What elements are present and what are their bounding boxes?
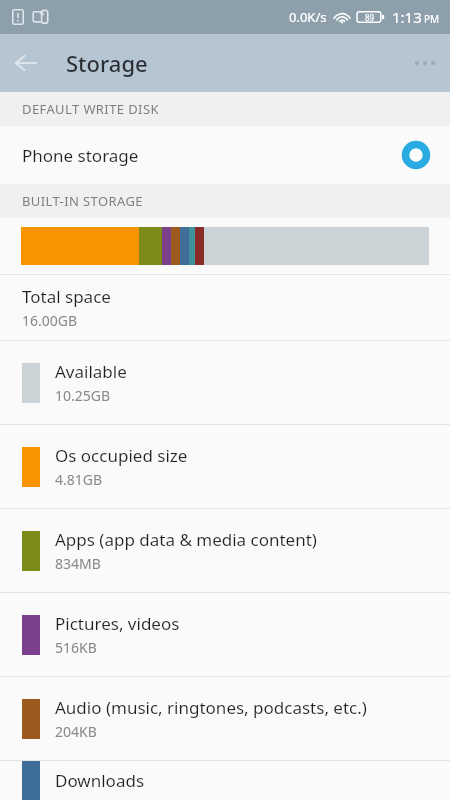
button[interactable]: Pictures, videos	[0, 593, 450, 676]
button[interactable]: Audio (music, ringtones, podcasts, etc.)	[0, 677, 450, 760]
staticText: 4.81GB	[55, 470, 103, 489]
staticText: Phone storage	[22, 144, 139, 167]
button[interactable]: Available	[0, 341, 450, 424]
staticText: 16.00GB	[22, 311, 78, 330]
staticText: 834MB	[55, 554, 101, 573]
staticText: BUILT-IN STORAGE	[22, 192, 143, 210]
button[interactable]: Downloads	[0, 761, 450, 800]
staticText: Pictures, videos	[55, 612, 180, 635]
staticText: Total space	[22, 285, 111, 308]
staticText: Apps (app data & media content)	[55, 528, 317, 551]
button[interactable]: Os occupied size	[0, 425, 450, 508]
staticText: Downloads	[55, 769, 145, 792]
staticText: Storage	[66, 48, 148, 78]
button[interactable]: Back	[0, 37, 52, 89]
staticText: PM	[424, 12, 440, 26]
staticText: 1:13	[392, 7, 422, 27]
button[interactable]: Apps (app data & media content)	[0, 509, 450, 592]
staticText: Available	[55, 360, 127, 383]
staticText: 10.25GB	[55, 386, 111, 405]
button[interactable]: Total space	[0, 275, 450, 340]
staticText: Os occupied size	[55, 444, 188, 467]
button[interactable]: Phone storage	[0, 126, 450, 184]
staticText: 204KB	[55, 722, 97, 741]
button[interactable]: More options	[400, 38, 450, 88]
staticText: 516KB	[55, 638, 97, 657]
staticText: DEFAULT WRITE DISK	[22, 100, 159, 118]
staticText: 0.0K/s	[289, 8, 327, 26]
staticText: Audio (music, ringtones, podcasts, etc.)	[55, 696, 367, 719]
staticText: 89	[365, 12, 375, 23]
